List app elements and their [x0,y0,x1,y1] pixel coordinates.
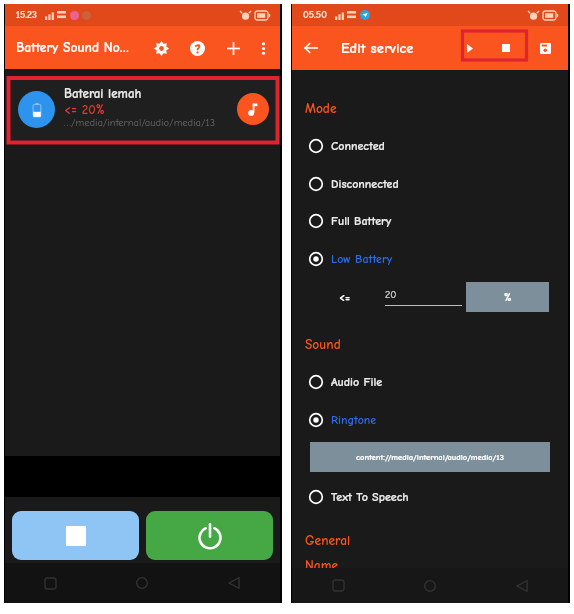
staticText: 15.23 [16,9,37,21]
staticText: Sound [305,337,341,353]
staticText: Full Battery [331,214,392,228]
staticText: 05.50 [303,9,327,21]
button[interactable]: Connected [292,127,568,164]
staticText: Low Battery [331,252,393,266]
staticText: Text To Speech [331,490,409,504]
staticText: <= 20% [64,102,105,117]
button[interactable]: Settings [146,33,176,63]
button[interactable]: More options [250,35,276,61]
button[interactable]: % [466,282,549,312]
staticText: General [305,533,351,549]
staticText: % [504,291,512,304]
staticText: Disconnected [331,177,399,191]
staticText: …/media/internal/audio/media/13 [64,117,216,129]
button[interactable]: content://media/internal/audio/media/13 [310,442,550,472]
staticText: Mode [305,101,337,117]
button[interactable]: Play sound [237,93,269,125]
button[interactable]: Save [532,35,558,61]
button[interactable]: Baterai lemah [10,78,275,140]
staticText: Ringtone [331,413,377,427]
button[interactable]: Full Battery [292,202,568,239]
button[interactable]: Add [218,33,248,63]
button[interactable]: Help [182,33,212,63]
staticText: Connected [331,139,385,153]
staticText: Baterai lemah [64,86,142,101]
button[interactable]: Stop [12,511,139,560]
staticText: Audio File [331,375,383,389]
button[interactable]: Stop [493,35,519,61]
button[interactable]: Audio File [292,363,568,400]
button[interactable]: Back [298,35,324,61]
button[interactable]: Power [146,511,273,560]
staticText: <= [339,291,351,304]
button[interactable]: Play [457,35,483,61]
staticText: 20 [385,289,397,301]
staticText: content://media/internal/audio/media/13 [356,452,504,462]
button[interactable]: Text To Speech [292,478,568,515]
button[interactable]: Ringtone [292,401,568,438]
staticText: Edit service [341,40,414,57]
staticText: Name [305,558,339,574]
button[interactable]: Disconnected [292,165,568,202]
button[interactable]: Low Battery [292,240,568,277]
staticText: Battery Sound No… [16,40,129,56]
